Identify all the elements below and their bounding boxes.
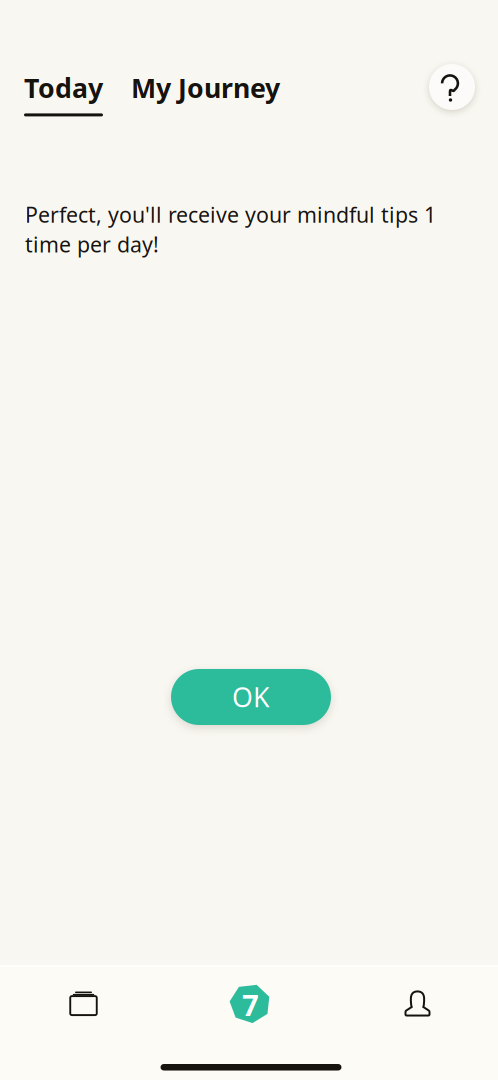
button[interactable]: Cards bbox=[0, 977, 166, 1029]
button[interactable]: Profile bbox=[332, 977, 498, 1029]
button[interactable]: Today bbox=[24, 70, 103, 116]
button[interactable]: OK bbox=[169, 669, 329, 725]
staticText: 7 bbox=[242, 985, 259, 1024]
staticText: OK bbox=[232, 679, 270, 715]
button[interactable]: Help bbox=[428, 0, 498, 111]
button[interactable]: Today bbox=[166, 977, 332, 1029]
button[interactable]: My Journey bbox=[103, 70, 280, 116]
staticText: Today bbox=[24, 70, 103, 105]
staticText: My Journey bbox=[131, 70, 280, 105]
staticText: Perfect, you'll receive your mindful tip… bbox=[25, 200, 436, 258]
